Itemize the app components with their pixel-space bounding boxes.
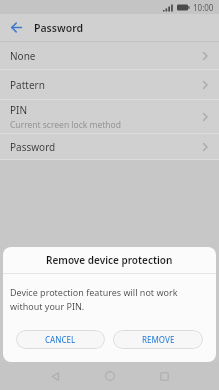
button[interactable]: Password — [0, 134, 219, 159]
button[interactable]: REMOVE — [113, 330, 203, 349]
button[interactable] — [160, 372, 169, 381]
staticText: Password — [34, 21, 84, 35]
staticText: CANCEL — [45, 334, 76, 345]
button[interactable]: CANCEL — [16, 330, 105, 349]
button[interactable]: PIN — [0, 100, 219, 133]
button[interactable]: None — [0, 42, 219, 69]
button[interactable] — [11, 22, 22, 33]
staticText: Password — [10, 140, 56, 154]
staticText: None — [10, 49, 36, 63]
staticText: Device protection features will not work… — [10, 286, 178, 313]
staticText: Current screen lock method — [10, 119, 121, 131]
staticText: PIN — [10, 103, 28, 117]
staticText: Remove device protection — [46, 253, 173, 267]
button[interactable]: Pattern — [0, 70, 219, 99]
button[interactable] — [51, 372, 60, 381]
staticText: 10:00 — [193, 2, 214, 13]
staticText: REMOVE — [142, 334, 175, 345]
staticText: Pattern — [10, 78, 45, 92]
button[interactable] — [105, 371, 115, 381]
